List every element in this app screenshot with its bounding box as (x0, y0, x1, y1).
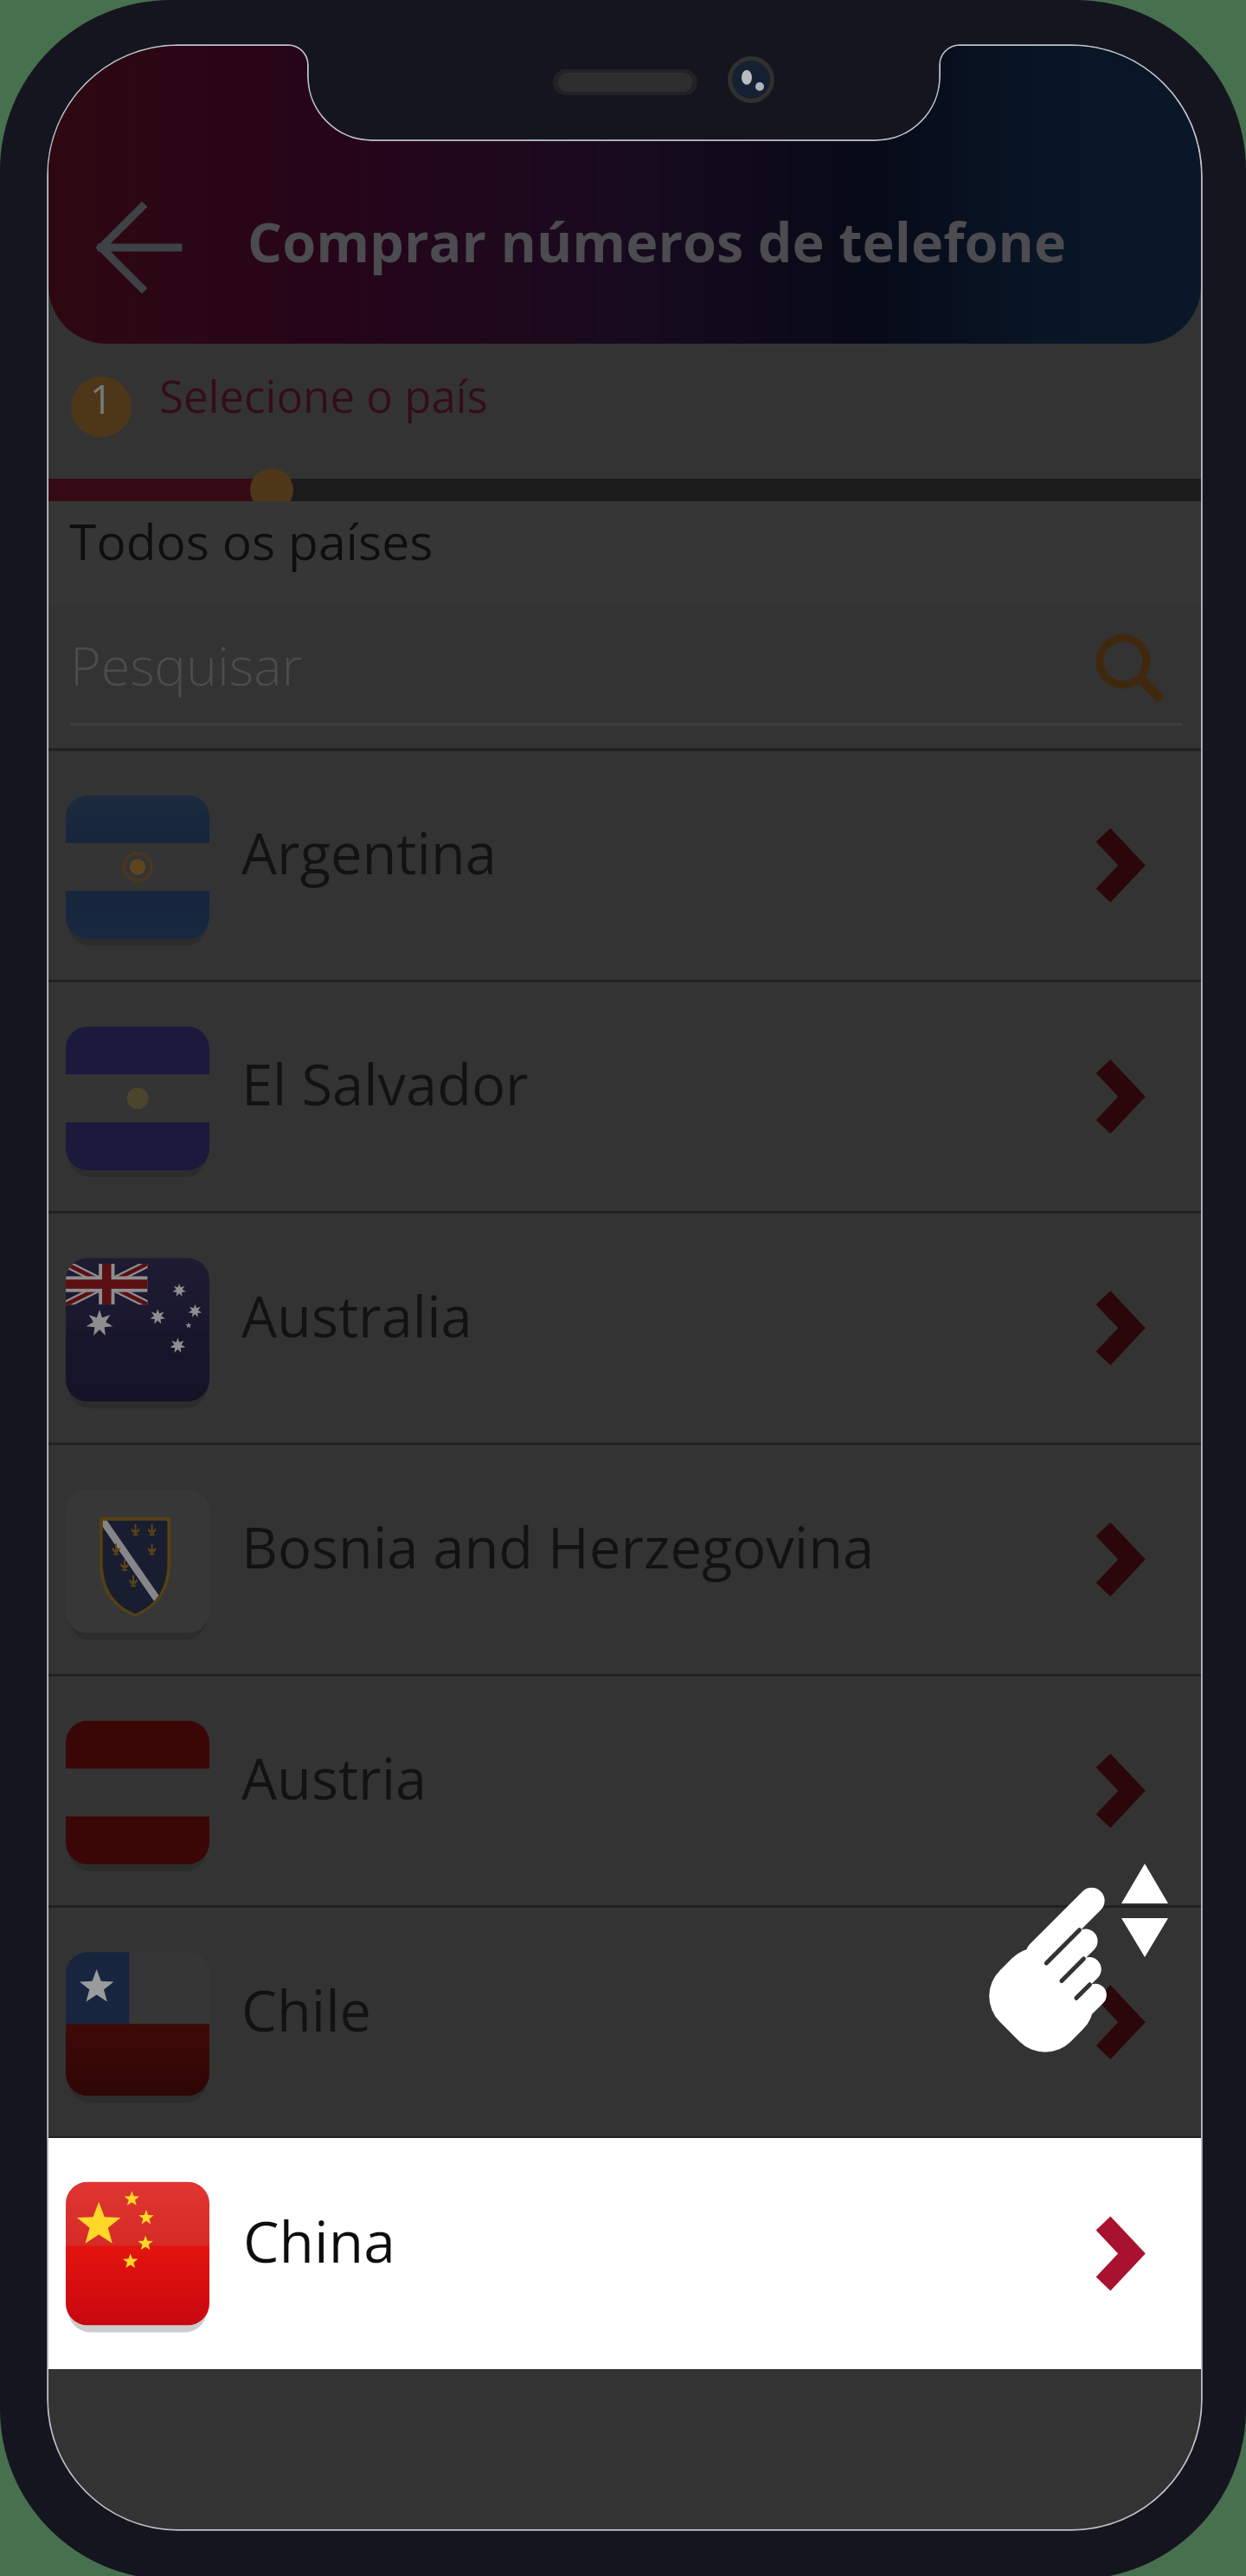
button[interactable]: Austria (48, 1675, 1201, 1906)
staticText: Argentina (241, 815, 497, 892)
button[interactable]: Selecione o país (48, 346, 1201, 472)
staticText: China (243, 2201, 395, 2279)
button[interactable]: China (48, 2138, 1201, 2369)
staticText: Todos os países (69, 507, 434, 575)
staticText: Pesquisar (70, 629, 303, 701)
staticText: Australia (241, 1278, 472, 1355)
button[interactable]: Back (61, 203, 151, 293)
staticText: Austria (241, 1740, 427, 1817)
staticText: Bosnia and Herzegovina (241, 1509, 875, 1586)
staticText: Selecione o país (159, 365, 488, 425)
button[interactable]: Pesquisar (48, 597, 1201, 727)
button[interactable]: Bosnia and Herzegovina (48, 1444, 1201, 1675)
button[interactable]: El Salvador (48, 981, 1201, 1212)
button[interactable]: Chile (48, 1907, 1201, 2138)
staticText: Comprar números de telefone (247, 204, 1067, 279)
button[interactable]: Argentina (48, 750, 1201, 981)
staticText: 1 (90, 372, 112, 425)
staticText: El Salvador (241, 1046, 529, 1123)
staticText: Chile (241, 1972, 372, 2049)
button[interactable]: Australia (48, 1213, 1201, 1444)
